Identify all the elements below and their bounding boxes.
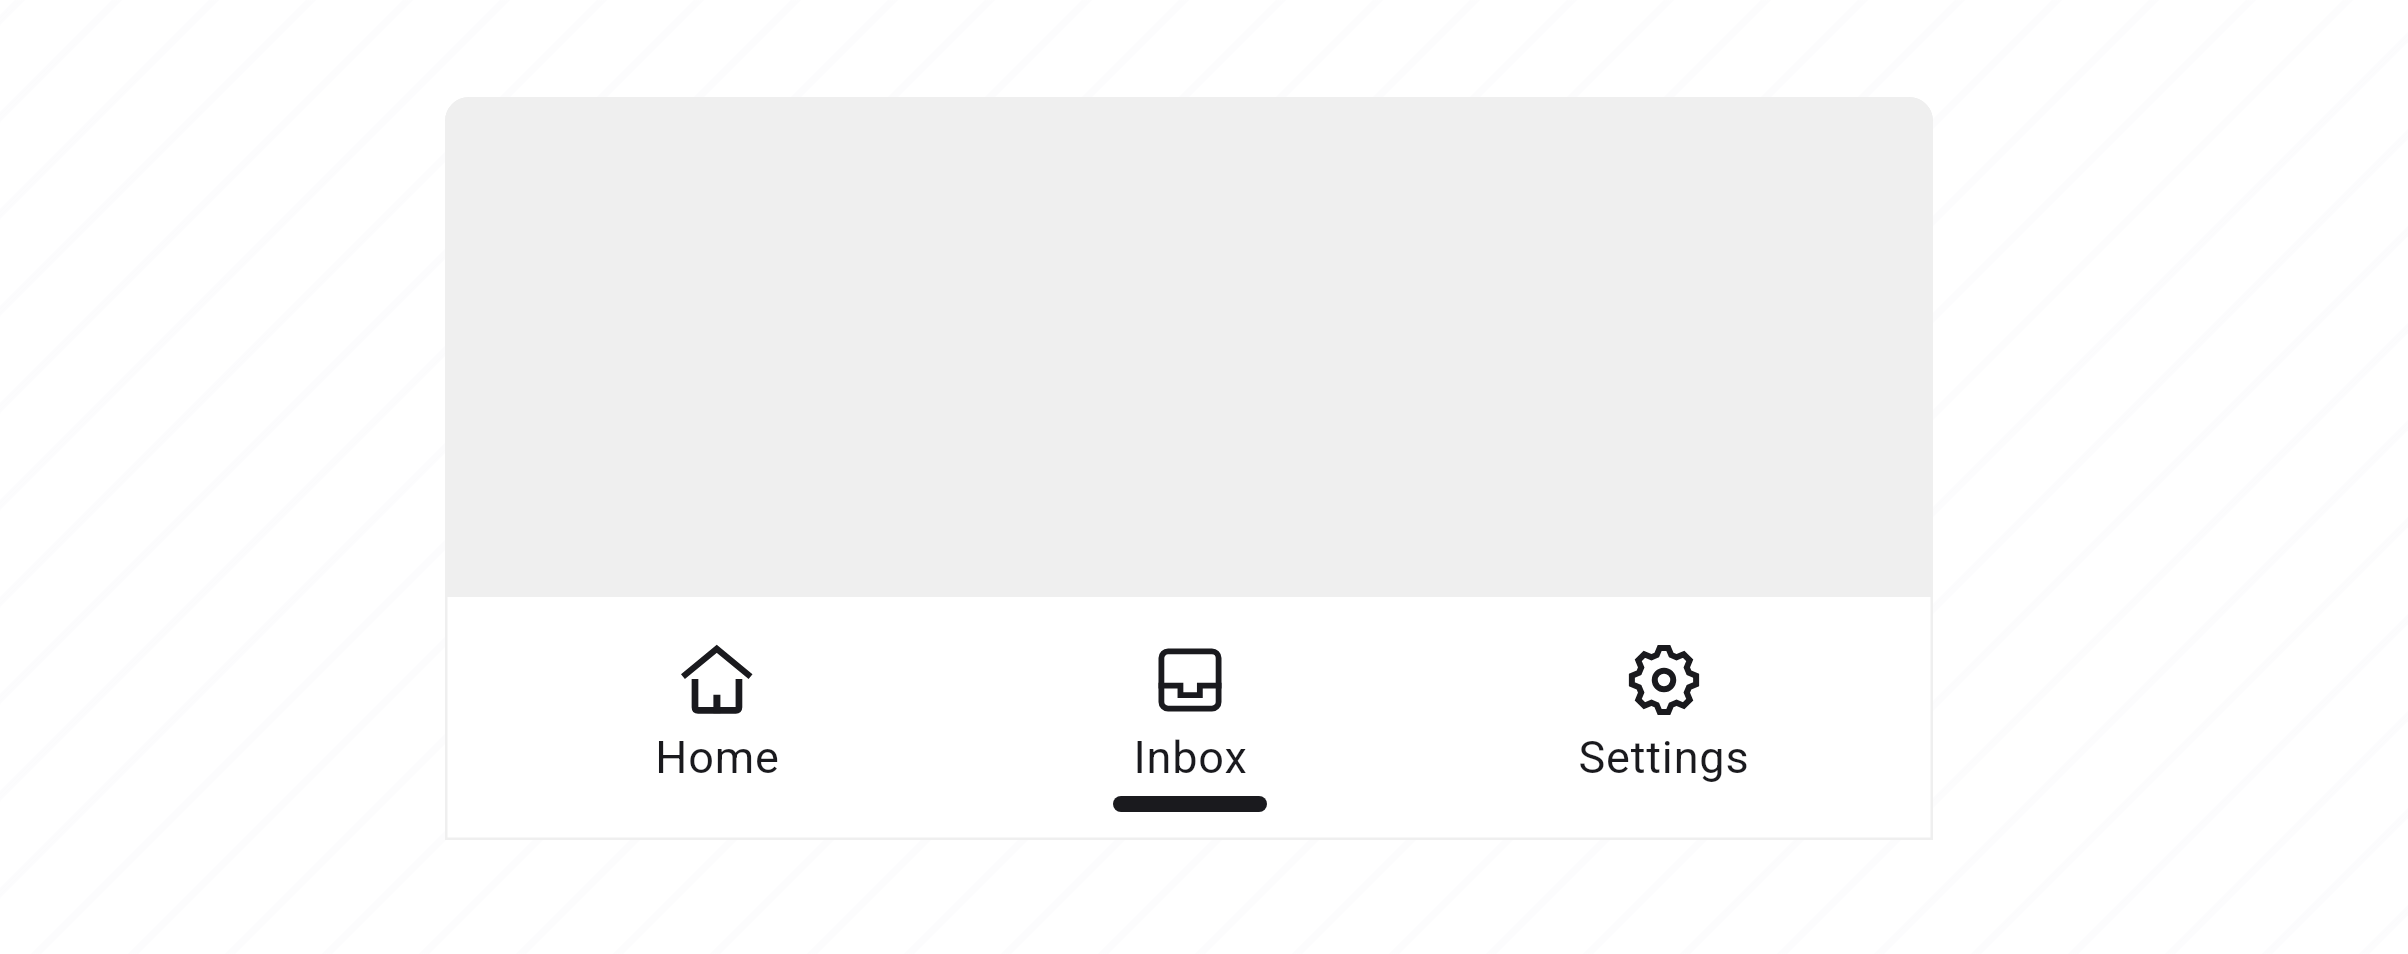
button[interactable]: Settings bbox=[1429, 597, 1899, 840]
button[interactable]: Inbox bbox=[955, 597, 1425, 840]
button[interactable]: Home bbox=[482, 597, 952, 840]
staticText: Settings bbox=[1578, 731, 1750, 784]
staticText: Home bbox=[655, 731, 780, 784]
staticText: Inbox bbox=[1133, 731, 1248, 784]
